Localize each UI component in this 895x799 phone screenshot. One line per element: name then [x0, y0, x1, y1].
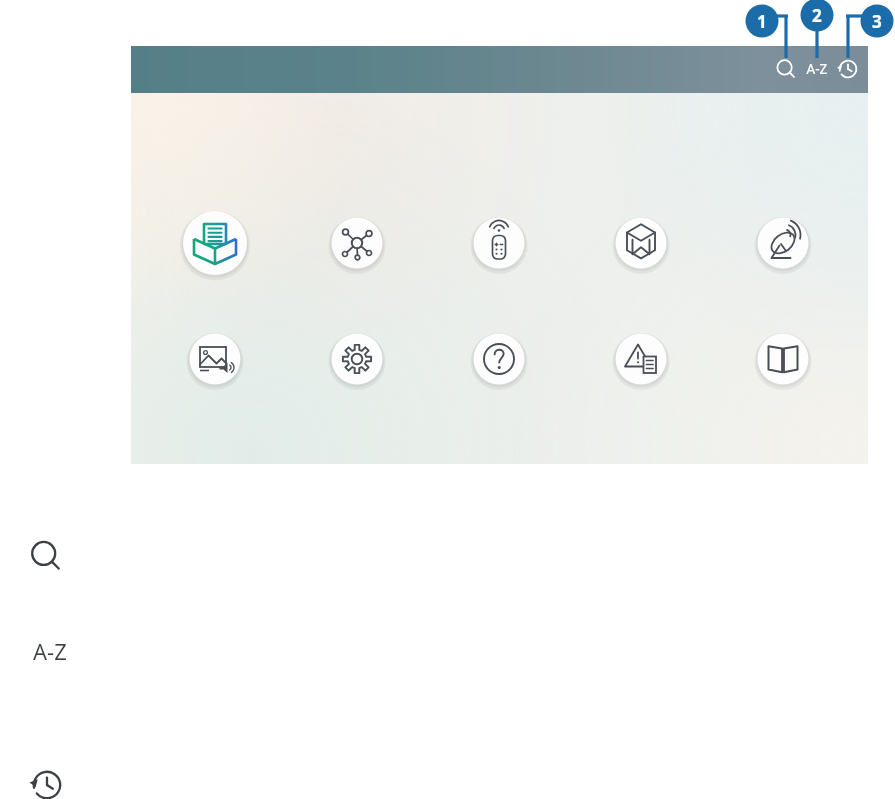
button[interactable]: Network status: [326, 212, 388, 274]
button[interactable]: Apps: [610, 212, 672, 274]
button[interactable]: User guide: [756, 332, 810, 386]
button[interactable]: Help: [472, 332, 526, 386]
button[interactable]: Broadcast: [752, 212, 814, 274]
button[interactable]: Picture and sound: [188, 332, 242, 386]
button[interactable]: Search: [773, 56, 799, 82]
button[interactable]: Recently used: [835, 56, 861, 82]
button[interactable]: Remote control: [468, 212, 530, 274]
button[interactable]: Sort A to Z: [802, 55, 832, 85]
button[interactable]: Scan to device: [184, 212, 246, 274]
button[interactable]: Alerts: [614, 332, 668, 386]
button[interactable]: Settings: [330, 332, 384, 386]
